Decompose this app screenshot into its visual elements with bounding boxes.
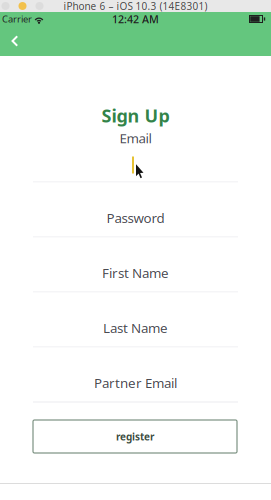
button[interactable]: Password	[33, 182, 238, 237]
staticText: Partner Email	[94, 374, 177, 392]
button[interactable]: Last Name	[33, 292, 238, 347]
staticText: 12:42 AM	[112, 12, 159, 26]
button[interactable]: First Name	[33, 237, 238, 292]
staticText: iPhone 6 – iOS 10.3 (14E8301)	[63, 0, 207, 13]
button[interactable]: Email	[33, 127, 238, 182]
staticText: Carrier	[2, 13, 32, 25]
button[interactable]: Back	[0, 26, 29, 56]
staticText: Email	[119, 129, 151, 147]
staticText: Sign Up	[101, 103, 169, 128]
staticText: Last Name	[103, 319, 168, 337]
button[interactable]: Partner Email	[33, 347, 238, 402]
button[interactable]: register	[33, 420, 237, 453]
staticText: First Name	[102, 264, 169, 282]
staticText: register	[116, 430, 154, 443]
staticText: Password	[106, 209, 164, 227]
